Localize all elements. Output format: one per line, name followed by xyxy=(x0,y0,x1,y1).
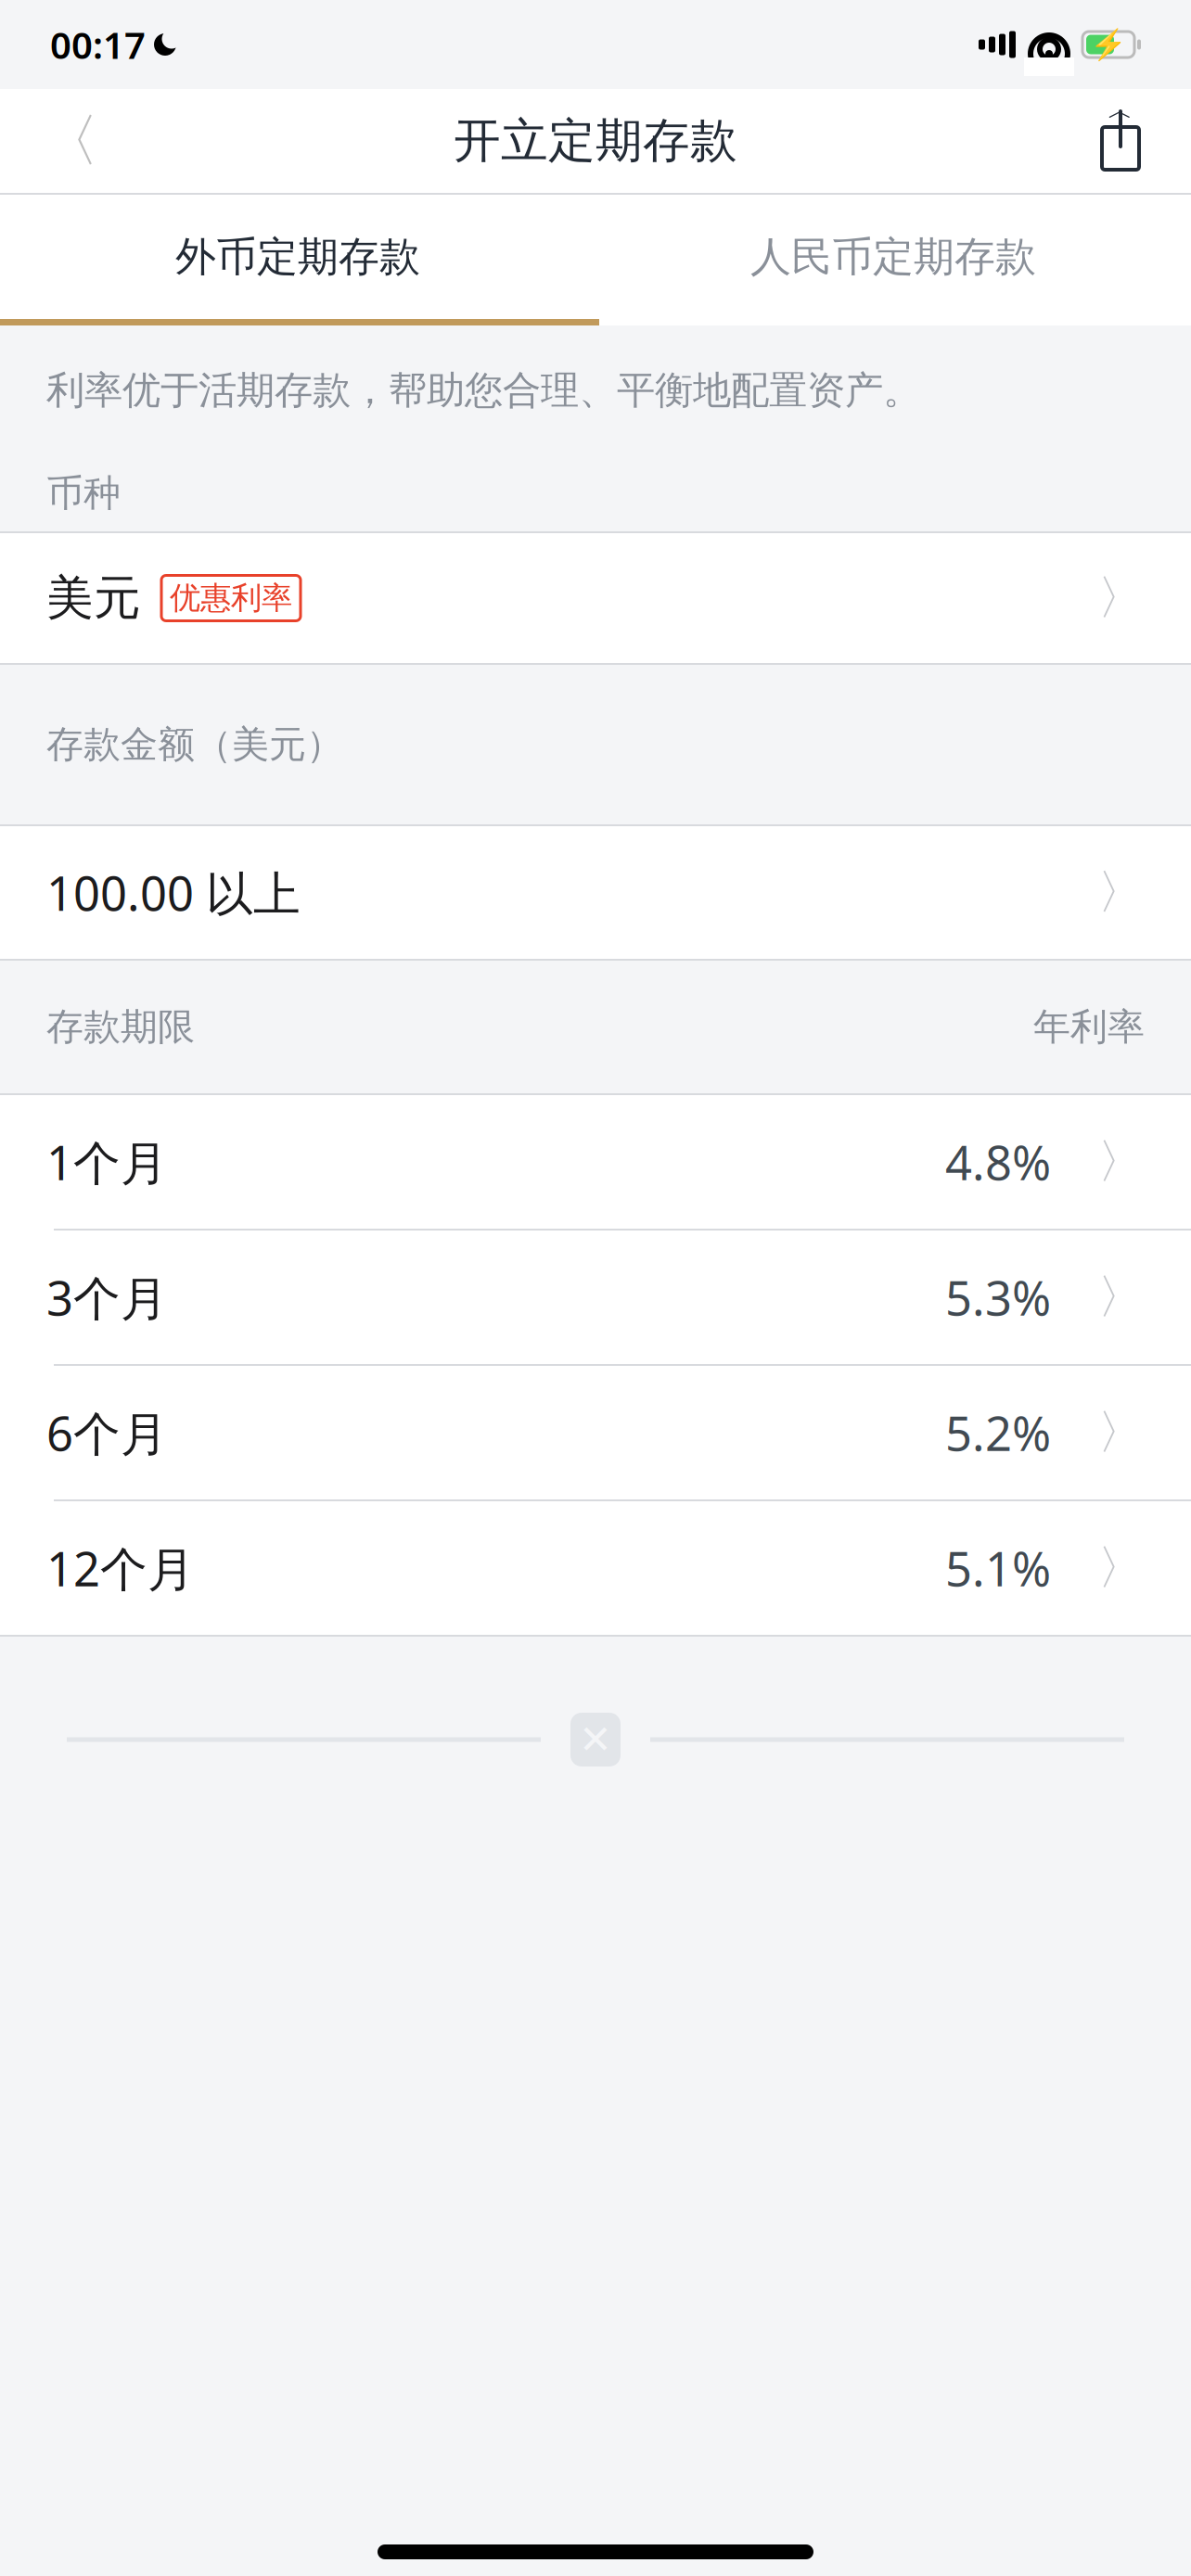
button[interactable]: 100.00 以上 xyxy=(0,826,1191,959)
button[interactable]: 人民币定期存款 xyxy=(595,195,1191,319)
staticText: ⚡ xyxy=(1090,28,1127,61)
staticText: 100.00 以上 xyxy=(46,861,301,924)
staticText: ✕ xyxy=(579,1717,612,1762)
staticText: 利率优于活期存款，帮助您合理、平衡地配置资产。 xyxy=(46,367,921,414)
staticText: 3个月 xyxy=(46,1266,168,1329)
staticText: 〈 xyxy=(42,106,99,176)
staticText: 12个月 xyxy=(46,1537,195,1599)
staticText: 〉 xyxy=(1097,864,1145,921)
staticText: 1个月 xyxy=(46,1131,168,1193)
staticText: 〉 xyxy=(1097,1268,1145,1326)
staticText: 〉 xyxy=(1097,1133,1145,1191)
staticText: 存款金额（美元） xyxy=(46,722,343,767)
button[interactable]: 3个月 xyxy=(0,1231,1191,1364)
staticText: 5.1% xyxy=(945,1537,1051,1599)
button[interactable]: Share xyxy=(1076,96,1165,185)
button[interactable]: 美元 xyxy=(0,533,1191,663)
staticText: 〉 xyxy=(1097,569,1145,627)
staticText: 外币定期存款 xyxy=(175,232,420,282)
staticText: 6个月 xyxy=(46,1401,168,1464)
button[interactable]: Back xyxy=(26,96,115,185)
staticText: 5.3% xyxy=(945,1266,1051,1329)
button[interactable]: 1个月 xyxy=(0,1095,1191,1229)
staticText: 币种 xyxy=(46,471,121,516)
button[interactable]: 6个月 xyxy=(0,1366,1191,1499)
staticText: 开立定期存款 xyxy=(454,112,737,170)
staticText: ︿ xyxy=(1108,95,1133,126)
staticText: 〉 xyxy=(1097,1539,1145,1597)
staticText: 5.2% xyxy=(945,1401,1051,1464)
button[interactable]: 外币定期存款 xyxy=(0,195,595,319)
staticText: 优惠利率 xyxy=(170,579,292,617)
staticText: 年利率 xyxy=(1033,1004,1145,1050)
staticText: 人民币定期存款 xyxy=(750,232,1036,282)
staticText: 存款期限 xyxy=(46,1004,195,1050)
staticText: 〉 xyxy=(1097,1404,1145,1461)
staticText: 4.8% xyxy=(945,1131,1051,1193)
staticText: 00:17 xyxy=(50,20,146,69)
staticText: 美元 xyxy=(46,569,141,627)
button[interactable]: 12个月 xyxy=(0,1501,1191,1635)
